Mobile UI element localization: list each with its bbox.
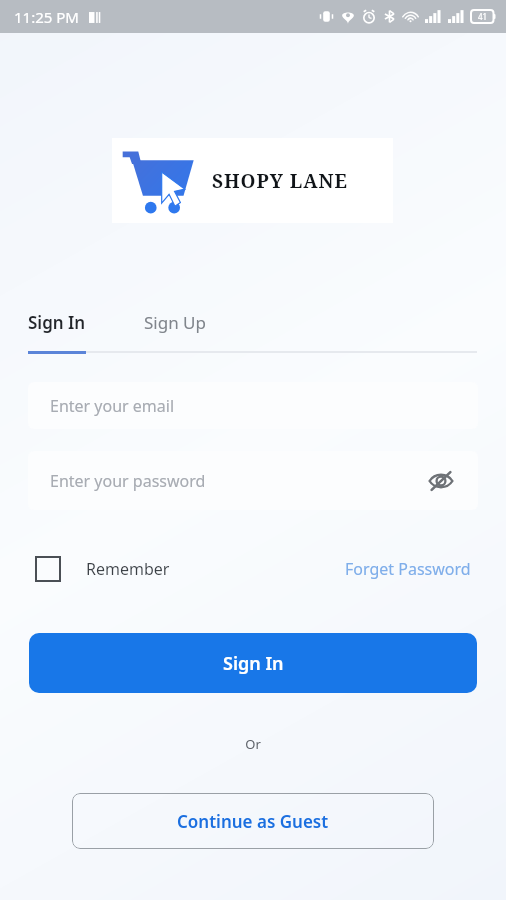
staticText: Enter your password	[50, 470, 206, 492]
staticText: Sign In	[223, 651, 284, 676]
button[interactable]: Enter your email	[28, 382, 478, 429]
staticText: SHOPY LANE	[212, 168, 348, 194]
staticText: Enter your email	[50, 395, 175, 417]
button[interactable]: Continue as Guest	[72, 793, 434, 849]
button[interactable]: Show password	[426, 466, 456, 496]
staticText: Continue as Guest	[177, 810, 329, 833]
staticText: Sign In	[28, 311, 86, 334]
button[interactable]: Sign In	[29, 633, 477, 693]
button[interactable]: Sign In	[28, 311, 92, 334]
staticText: Remember	[86, 558, 170, 580]
staticText: 41	[478, 11, 488, 22]
button[interactable]: Sign Up	[144, 311, 206, 334]
staticText: Sign Up	[144, 311, 206, 334]
staticText: 11:25 PM	[14, 7, 79, 27]
staticText: Or	[0, 735, 506, 753]
button[interactable]: Remember	[35, 556, 170, 582]
button[interactable]: Enter your password	[28, 451, 478, 510]
staticText: Forget Password	[345, 558, 471, 580]
button[interactable]: Forget Password	[345, 558, 471, 580]
